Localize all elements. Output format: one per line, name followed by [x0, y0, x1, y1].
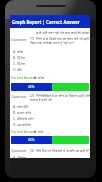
staticText: Graph Report | Correct Answer — [12, 19, 80, 25]
button[interactable]: 45% — [11, 83, 89, 91]
staticText: Question: — [11, 148, 27, 153]
staticText: D. क्षेत्र — [13, 67, 22, 72]
button[interactable]: Graph Report | Correct Answer — [10, 15, 90, 28]
staticText: Question: — [11, 37, 27, 42]
staticText: (1) निम्न में से किसी एक का चयन करें जो … — [30, 36, 95, 41]
staticText: D. इस कार्यके — [13, 122, 31, 127]
staticText: A. गोल प्रति — [13, 104, 29, 109]
staticText: Correct Answer : — [11, 129, 39, 134]
staticText: C. त्रिज्या — [13, 61, 25, 66]
staticText: B. समान उत्तर — [13, 110, 32, 115]
staticText: विश्व एक अनोखा स्थान है जहाँ पर? — [30, 40, 75, 45]
staticText: A. कोण — [13, 49, 24, 54]
button[interactable]: 45% — [11, 136, 89, 144]
staticText: B. त्रिज्या — [13, 55, 25, 60]
staticText: 45% — [28, 85, 35, 89]
staticText: A. कोण — [34, 75, 45, 80]
staticText: A. प्रतिबंध — [13, 155, 27, 160]
staticText: (3) नीचे दिए गए विकल्पों में से कौन सा स… — [30, 148, 90, 153]
staticText: C. प्रतिफल उत्तर — [13, 116, 34, 121]
staticText: (2) निम्नलिखित में से कौन सा विकल्प सही … — [30, 93, 91, 98]
staticText: सभी सही उत्तर नही देने वाले छात्रों की स… — [10, 30, 89, 35]
staticText: A. गोल — [34, 129, 44, 134]
staticText: Correct Answer : — [11, 75, 39, 80]
staticText: बताता है इनमें से? — [30, 97, 53, 102]
staticText: Question: — [11, 94, 27, 99]
staticText: 45% — [28, 138, 35, 142]
